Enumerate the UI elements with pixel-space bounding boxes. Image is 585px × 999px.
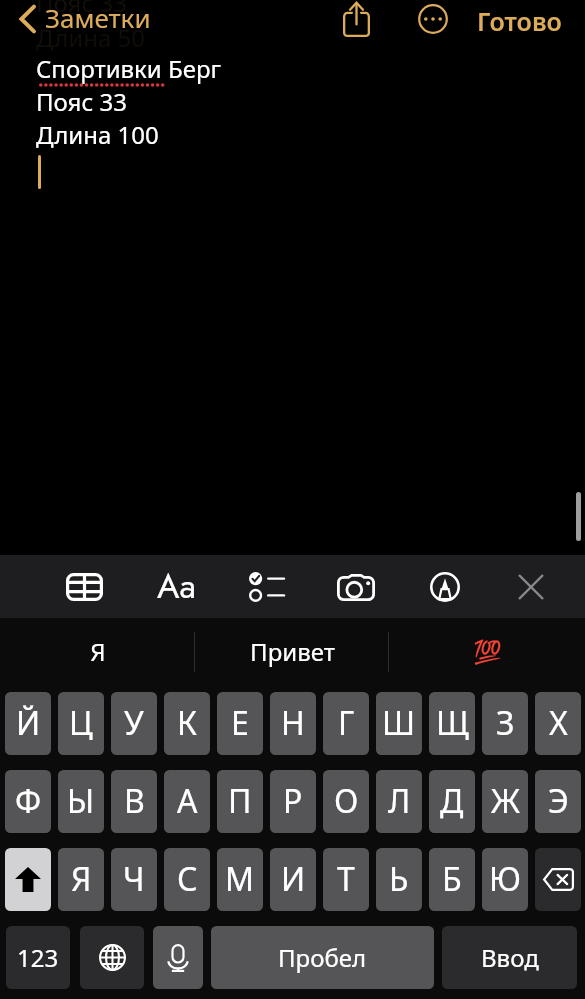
staticText: Пояс 33 [36,0,127,19]
button[interactable]: Х [535,692,581,755]
staticText: У [124,701,144,745]
button[interactable]: Ц [58,692,104,755]
button[interactable]: Ы [58,770,104,833]
button[interactable]: Б [429,848,475,911]
staticText: О [334,779,359,823]
button[interactable]: М [217,848,263,911]
staticText: Н [281,701,305,745]
button[interactable]: Camera [326,555,386,618]
button[interactable]: Готово [468,0,571,42]
button[interactable]: Ш [376,692,422,755]
staticText: К [177,701,198,745]
button[interactable]: Ввод [442,926,577,989]
button[interactable]: Hide keyboard [501,555,561,618]
button[interactable]: Numbers [6,926,70,989]
button[interactable]: З [482,692,528,755]
staticText: Я [71,857,92,901]
staticText: М [225,857,255,901]
staticText: Ш [382,701,416,745]
staticText: А [177,779,198,823]
button[interactable]: Text format [146,555,206,618]
staticText: Спортивки Берг [36,52,222,85]
staticText: 123 [17,941,59,974]
staticText: Щ [436,701,469,745]
button[interactable]: Ю [482,848,528,911]
button[interactable]: Insert table [54,555,114,618]
button[interactable]: Г [323,692,369,755]
button[interactable]: More options [412,0,454,38]
button[interactable]: У [111,692,157,755]
staticText: С [177,857,198,901]
staticText: Пояс 33 [36,85,127,118]
staticText: Я [90,635,106,668]
button[interactable]: Ч [111,848,157,911]
button[interactable]: Заметки [10,0,157,44]
button[interactable]: Й [5,692,51,755]
staticText: Длина 100 [36,118,159,151]
staticText: Б [442,857,462,901]
button[interactable]: Э [535,770,581,833]
button[interactable]: Ф [5,770,51,833]
staticText: П [228,779,252,823]
button[interactable]: Т [323,848,369,911]
button[interactable]: Л [376,770,422,833]
button[interactable]: Checklist [236,555,296,618]
button[interactable]: Dictation [153,926,203,989]
staticText: Ц [69,701,93,745]
button[interactable]: П [217,770,263,833]
staticText: Aa [157,562,196,611]
button[interactable]: Д [429,770,475,833]
staticText: Е [231,701,249,745]
button[interactable]: Щ [429,692,475,755]
button[interactable]: Share [335,0,377,38]
staticText: З [496,701,515,745]
button[interactable]: Я [0,618,195,691]
staticText: Ж [491,779,520,823]
staticText: Ф [15,779,42,823]
button[interactable]: Ж [482,770,528,833]
button[interactable]: Switch language [80,926,144,989]
staticText: Ввод [481,941,539,974]
staticText: Привет [250,635,335,668]
button[interactable]: В [111,770,157,833]
staticText: Заметки [45,0,151,34]
button[interactable]: Ь [376,848,422,911]
button[interactable]: И [270,848,316,911]
staticText: Длина 50 [36,21,145,54]
staticText: Х [549,701,568,745]
staticText: И [281,857,306,901]
button[interactable]: Markup [415,555,475,618]
staticText: Т [337,857,355,901]
button[interactable]: Я [58,848,104,911]
button[interactable]: О [323,770,369,833]
button[interactable]: Н [270,692,316,755]
button[interactable]: К [164,692,210,755]
button[interactable]: Shift [5,848,51,911]
staticText: Л [388,779,411,823]
button[interactable]: 💯 [390,618,585,691]
staticText: Пробел [278,941,367,974]
staticText: Г [338,701,355,745]
button[interactable]: Пробел [211,926,434,989]
staticText: Ч [123,857,145,901]
staticText: Ю [489,857,521,901]
staticText: Готово [477,4,562,38]
staticText: Й [16,701,41,745]
staticText: Р [283,779,303,823]
staticText: Д [440,779,464,823]
button[interactable]: Р [270,770,316,833]
staticText: Ы [67,779,95,823]
button[interactable]: Привет [195,618,390,691]
button[interactable]: С [164,848,210,911]
staticText: В [124,779,145,823]
staticText: Ь [389,857,409,901]
button[interactable]: А [164,770,210,833]
button[interactable]: Backspace [535,848,581,911]
staticText: 💯 [473,639,502,666]
staticText: Э [548,779,569,823]
button[interactable]: Е [217,692,263,755]
